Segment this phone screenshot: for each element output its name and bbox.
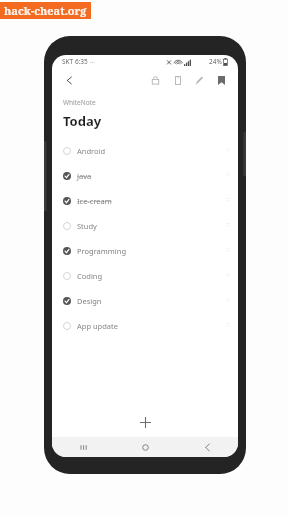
button[interactable]: Java [52, 163, 238, 188]
staticText: hack-cheat.org [4, 3, 87, 18]
staticText: Java [77, 171, 92, 181]
staticText: App update [77, 321, 118, 331]
button[interactable]: Edit [191, 72, 208, 89]
staticText: Design [77, 296, 102, 306]
button[interactable]: Recent apps [52, 437, 114, 457]
button[interactable]: Home [114, 437, 176, 457]
button[interactable]: Programming [52, 238, 238, 263]
button[interactable]: Ice-cream [52, 188, 238, 213]
button[interactable]: Study [52, 213, 238, 238]
button[interactable]: Coding [52, 263, 238, 288]
button[interactable]: Add note [134, 411, 156, 433]
button[interactable]: Android [52, 138, 238, 163]
button[interactable]: Back [60, 71, 78, 89]
staticText: Programming [77, 246, 126, 256]
staticText: Study [77, 221, 97, 231]
staticText: 24% [209, 57, 222, 66]
button[interactable]: Back [176, 437, 238, 457]
staticText: WhiteNote [63, 98, 96, 107]
button[interactable]: Bookmark [213, 72, 230, 89]
staticText: Coding [77, 271, 103, 281]
staticText: ··· [90, 58, 95, 66]
staticText: SKT 6:35 [62, 57, 88, 66]
button[interactable]: Lock [147, 72, 164, 89]
staticText: Ice-cream [77, 196, 112, 206]
button[interactable]: App update [52, 313, 238, 338]
staticText: Today [63, 112, 102, 130]
button[interactable]: Card [169, 72, 186, 89]
staticText: Android [77, 146, 106, 156]
button[interactable]: Design [52, 288, 238, 313]
